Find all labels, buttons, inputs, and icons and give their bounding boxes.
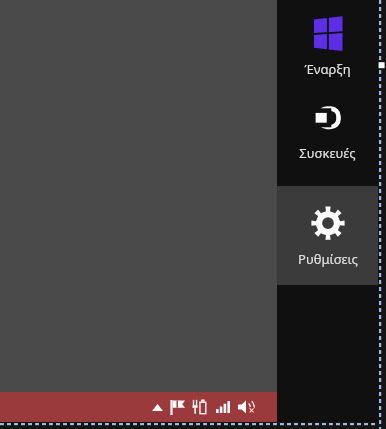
button[interactable]: Action center bbox=[166, 392, 188, 422]
staticText: Έναρξη bbox=[304, 60, 351, 78]
button[interactable]: Έναρξη bbox=[277, 0, 378, 86]
button[interactable]: Volume muted bbox=[234, 392, 258, 422]
staticText: Ρυθμίσεις bbox=[298, 250, 358, 268]
button[interactable]: Battery charging bbox=[188, 392, 212, 422]
staticText: Συσκευές bbox=[299, 144, 356, 162]
button[interactable]: Show hidden icons bbox=[148, 392, 166, 422]
button[interactable]: Ρυθμίσεις bbox=[277, 186, 378, 285]
button[interactable]: Network signal bbox=[212, 392, 234, 422]
button[interactable]: Συσκευές bbox=[277, 86, 378, 186]
